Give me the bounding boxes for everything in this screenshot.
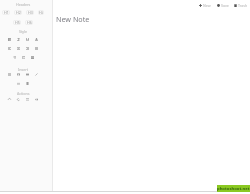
button[interactable]: photoshoot.net (217, 185, 250, 192)
button[interactable]: tool20 (34, 97, 39, 102)
button[interactable]: tool16 (25, 81, 30, 86)
button[interactable]: Trash (234, 2, 248, 9)
button[interactable]: tool3 (34, 37, 39, 42)
staticText: H4 (39, 10, 44, 15)
staticText: H3 (28, 10, 33, 15)
button[interactable]: tool17 (7, 97, 12, 102)
button[interactable]: tool18 (16, 97, 21, 102)
button[interactable]: H1 (2, 10, 10, 15)
button[interactable]: H4 (38, 10, 44, 15)
button[interactable]: tool5 (16, 46, 21, 51)
button[interactable]: tool6 (25, 46, 30, 51)
button[interactable]: tool11 (7, 72, 12, 77)
button[interactable]: Save (217, 2, 229, 9)
staticText: Save (221, 3, 229, 8)
staticText: New (203, 3, 211, 8)
button[interactable]: tool15 (16, 81, 21, 86)
button[interactable]: tool1 (16, 37, 21, 42)
staticText: Trash (238, 3, 248, 8)
staticText: Insert (18, 67, 28, 72)
button[interactable]: H6 (25, 20, 33, 25)
button[interactable]: tool12 (16, 72, 21, 77)
staticText: Actions (17, 91, 30, 96)
button[interactable]: tool9 (21, 55, 26, 60)
staticText: photoshoot.net (217, 186, 250, 192)
button[interactable]: H2 (14, 10, 22, 15)
button[interactable]: tool2 (25, 37, 30, 42)
staticText: H5 (15, 20, 20, 25)
button[interactable]: tool13 (25, 72, 30, 77)
button[interactable]: H5 (13, 20, 21, 25)
staticText: H2 (16, 10, 21, 15)
button[interactable]: tool4 (7, 46, 12, 51)
button[interactable]: tool10 (30, 55, 35, 60)
button[interactable]: tool14 (34, 72, 39, 77)
button[interactable]: New (199, 2, 211, 9)
staticText: New Note (56, 14, 90, 24)
staticText: H1 (4, 10, 9, 15)
staticText: Style (19, 29, 28, 34)
button[interactable]: tool8 (12, 55, 17, 60)
staticText: H6 (27, 20, 32, 25)
staticText: Headers (16, 2, 31, 7)
button[interactable]: tool0 (7, 37, 12, 42)
button[interactable]: tool19 (25, 97, 30, 102)
button[interactable]: H3 (26, 10, 34, 15)
button[interactable]: tool7 (34, 46, 39, 51)
